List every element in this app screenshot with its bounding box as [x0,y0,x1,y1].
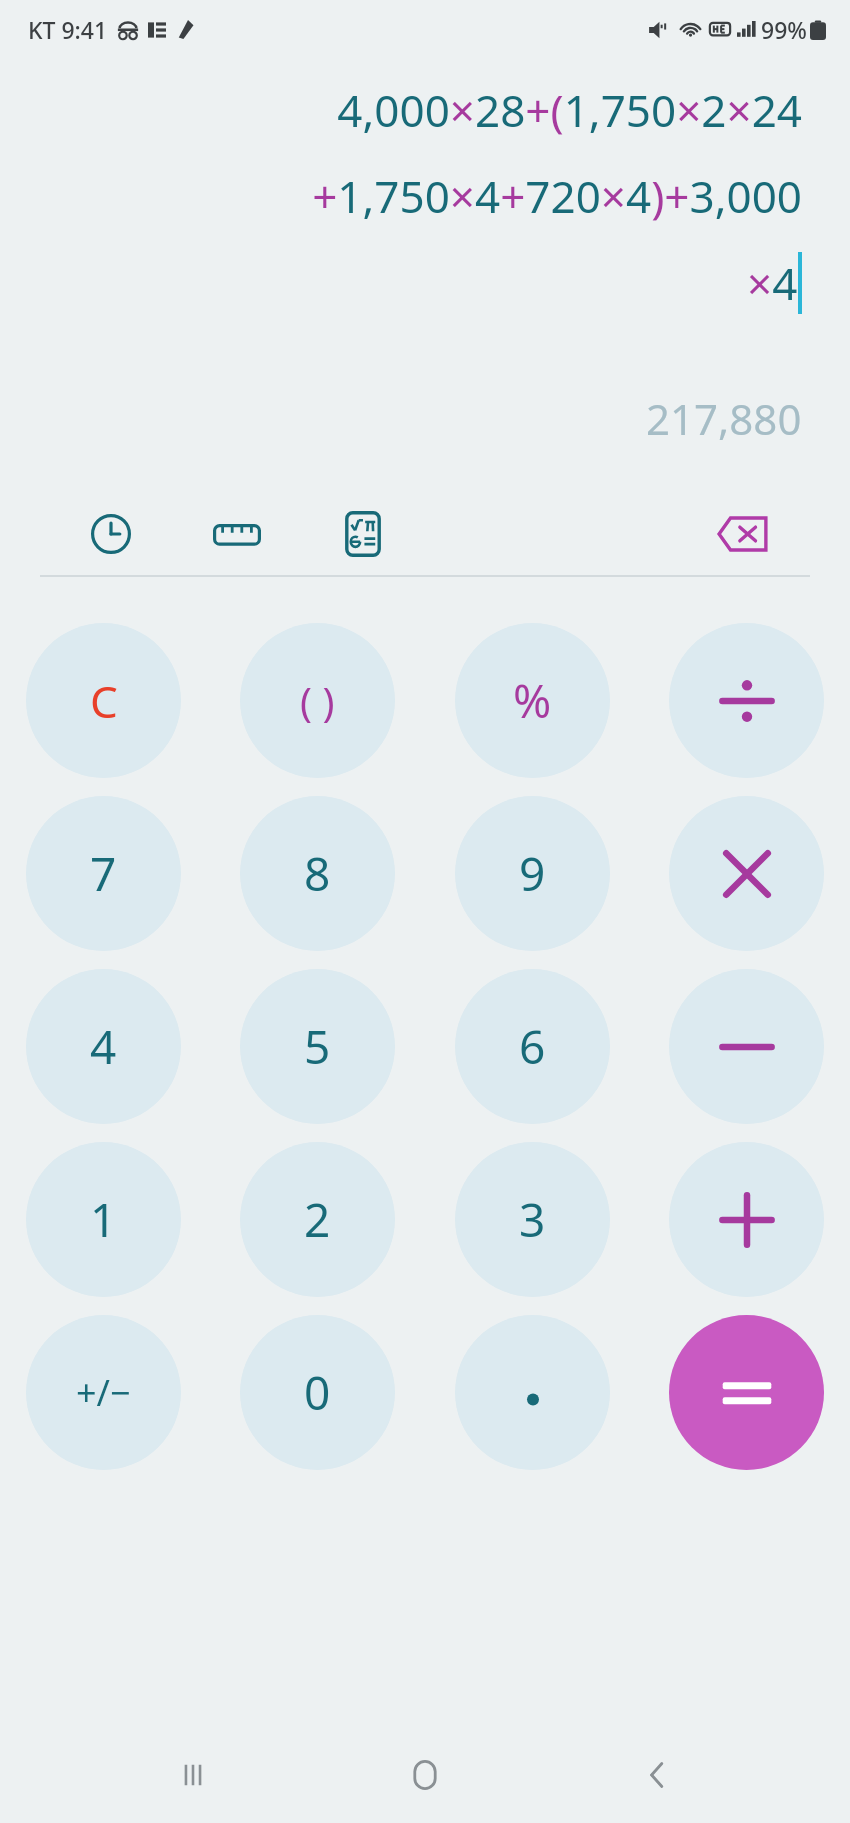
button[interactable]: History [78,501,144,567]
button[interactable]: Subtract [669,969,824,1124]
staticText: 4 [90,1015,117,1078]
button[interactable]: % [455,623,610,778]
staticText: C [90,671,118,731]
button[interactable]: Divide [669,623,824,778]
staticText: 7 [90,842,117,905]
staticText: 99% [761,14,807,45]
staticText: ×4 [747,253,798,313]
button[interactable]: Scientific calculator [330,501,396,567]
staticText: ( ) [300,674,335,728]
button[interactable]: 0 [240,1315,395,1470]
staticText: 8 [304,842,331,905]
staticText: +/− [76,1368,131,1417]
button[interactable]: 9 [455,796,610,951]
button[interactable]: Home [385,1735,465,1815]
staticText: % [513,669,552,732]
staticText: +1,750×4+720×4)+3,000 [312,166,802,226]
button[interactable]: Recents [153,1735,233,1815]
staticText: 2 [304,1188,331,1251]
staticText: 217,880 [646,390,802,447]
button[interactable]: Add [669,1142,824,1297]
button[interactable]: Decimal point [455,1315,610,1470]
button[interactable]: Unit converter [204,501,270,567]
button[interactable]: +/− [26,1315,181,1470]
staticText: 5 [304,1015,331,1078]
button[interactable]: 5 [240,969,395,1124]
staticText: 9 [519,842,546,905]
button[interactable]: Backspace [708,499,778,569]
button[interactable]: C [26,623,181,778]
button[interactable]: Equals [669,1315,824,1470]
button[interactable]: 4 [26,969,181,1124]
staticText: 1 [90,1188,117,1251]
button[interactable]: Multiply [669,796,824,951]
staticText: 0 [304,1361,331,1424]
button[interactable]: 2 [240,1142,395,1297]
button[interactable]: 7 [26,796,181,951]
staticText: 4,000×28+(1,750×2×24 [337,80,802,140]
button[interactable]: 6 [455,969,610,1124]
staticText: 6 [519,1015,546,1078]
button[interactable]: 1 [26,1142,181,1297]
button[interactable]: ( ) [240,623,395,778]
button[interactable]: Back [618,1735,698,1815]
button[interactable]: 8 [240,796,395,951]
button[interactable]: 3 [455,1142,610,1297]
staticText: KT 9:41 [28,14,108,45]
staticText: 3 [519,1188,546,1251]
